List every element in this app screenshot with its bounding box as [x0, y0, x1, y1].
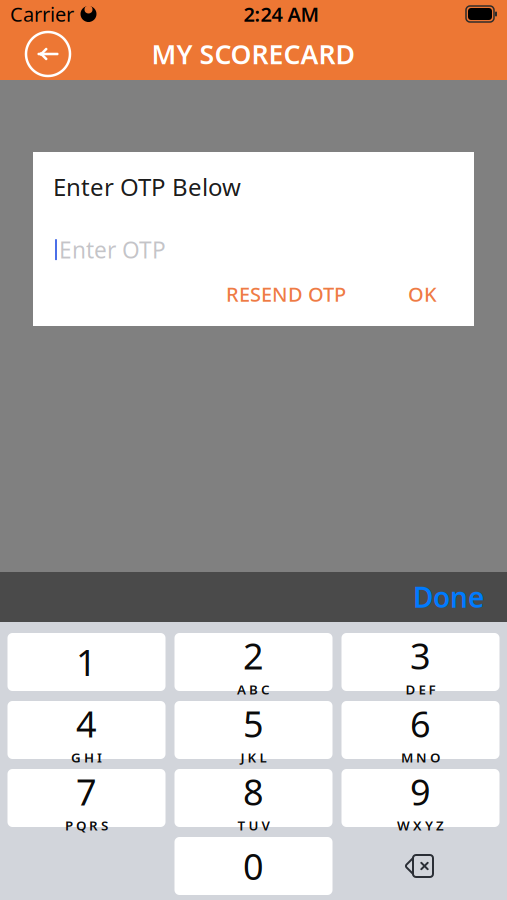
- staticText: 2: [243, 632, 264, 679]
- button[interactable]: 3: [341, 633, 499, 691]
- staticText: 7: [76, 768, 97, 815]
- staticText: 3: [410, 632, 431, 679]
- staticText: MY SCORECARD: [151, 36, 355, 72]
- staticText: 1: [76, 638, 97, 686]
- button[interactable]: 7: [7, 769, 165, 827]
- staticText: Carrier: [10, 1, 74, 27]
- button[interactable]: 5: [174, 701, 332, 759]
- button[interactable]: 8: [174, 769, 332, 827]
- button[interactable]: 4: [7, 701, 165, 759]
- staticText: 6: [410, 700, 431, 747]
- staticText: A B C: [237, 681, 270, 698]
- staticText: M N O: [401, 749, 440, 766]
- staticText: J K L: [240, 749, 266, 766]
- button[interactable]: OK: [398, 273, 447, 315]
- staticText: 9: [410, 768, 431, 815]
- button[interactable]: 9: [341, 769, 499, 827]
- staticText: P Q R S: [65, 817, 108, 834]
- button[interactable]: 0: [174, 837, 332, 895]
- staticText: Done: [413, 578, 484, 616]
- button[interactable]: Back: [22, 28, 74, 80]
- button[interactable]: 2: [174, 633, 332, 691]
- button[interactable]: 1: [7, 633, 165, 691]
- staticText: OK: [408, 281, 437, 307]
- staticText: T U V: [237, 817, 269, 834]
- button[interactable]: RESEND OTP: [216, 273, 356, 315]
- staticText: 4: [76, 700, 97, 747]
- staticText: 8: [243, 768, 264, 815]
- staticText: 0: [243, 842, 264, 890]
- staticText: RESEND OTP: [226, 281, 346, 307]
- staticText: Enter OTP Below: [53, 171, 241, 203]
- staticText: G H I: [71, 749, 102, 766]
- staticText: Enter OTP: [59, 235, 166, 265]
- button[interactable]: Done: [401, 570, 496, 624]
- staticText: 5: [243, 700, 264, 747]
- button[interactable]: 6: [341, 701, 499, 759]
- button[interactable]: Delete: [341, 837, 499, 895]
- staticText: W X Y Z: [397, 817, 444, 834]
- staticText: 2:24 AM: [243, 1, 319, 27]
- staticText: D E F: [405, 681, 435, 698]
